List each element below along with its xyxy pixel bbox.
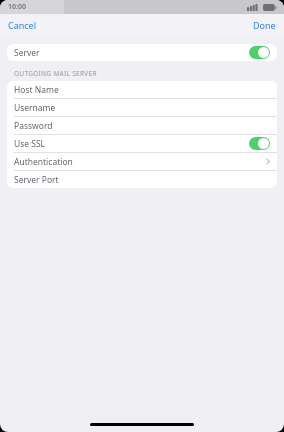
staticText: OUTGOING MAIL SERVER [14, 69, 97, 78]
other: Open Authentication [266, 158, 270, 165]
staticText: 10:00 [8, 2, 26, 12]
staticText: Authentication [14, 156, 73, 168]
button[interactable]: Done [245, 15, 284, 35]
button[interactable]: Authentication [7, 153, 277, 170]
button[interactable]: Username [7, 99, 277, 116]
button[interactable]: Cancel [0, 15, 45, 35]
button[interactable]: Host Name [7, 81, 277, 98]
staticText: Server Port [14, 174, 59, 186]
staticText: Cancel [8, 19, 37, 31]
button[interactable]: Use SSL toggle, on [249, 137, 270, 150]
staticText: Use SSL [14, 138, 46, 150]
staticText: Done [253, 19, 276, 31]
staticText: Password [14, 120, 53, 132]
button[interactable]: Server toggle, on [249, 46, 270, 59]
staticText: Host Name [14, 84, 59, 96]
button[interactable]: Password [7, 117, 277, 134]
staticText: Username [14, 102, 56, 114]
button[interactable]: Server Port [7, 171, 277, 188]
staticText: Server [14, 47, 40, 59]
